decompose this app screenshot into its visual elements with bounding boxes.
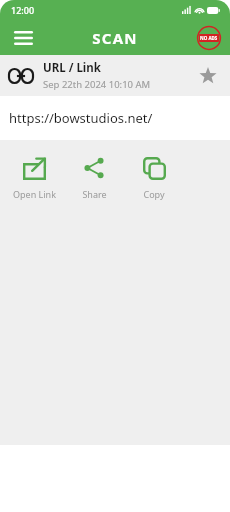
staticText: Copy <box>143 188 165 200</box>
button[interactable]: Favorite <box>191 59 225 93</box>
button[interactable]: No Ads <box>193 22 225 54</box>
staticText: 12:00 <box>11 4 35 16</box>
staticText: Sep 22th 2024 10:10 AM <box>43 78 151 91</box>
button[interactable]: Copy <box>124 149 184 204</box>
staticText: SCAN <box>92 28 138 48</box>
staticText: https://bowstudios.net/ <box>9 109 153 127</box>
staticText: Share <box>82 188 107 200</box>
button[interactable]: URL / Link <box>0 55 230 96</box>
button[interactable]: Open Link <box>4 149 64 204</box>
staticText: Open Link <box>13 188 56 200</box>
staticText: NO ADS <box>200 35 218 41</box>
staticText: URL / Link <box>43 60 101 76</box>
button[interactable]: https://bowstudios.net/ <box>0 96 230 140</box>
button[interactable]: Menu <box>6 21 40 55</box>
button[interactable]: Share <box>64 149 124 204</box>
